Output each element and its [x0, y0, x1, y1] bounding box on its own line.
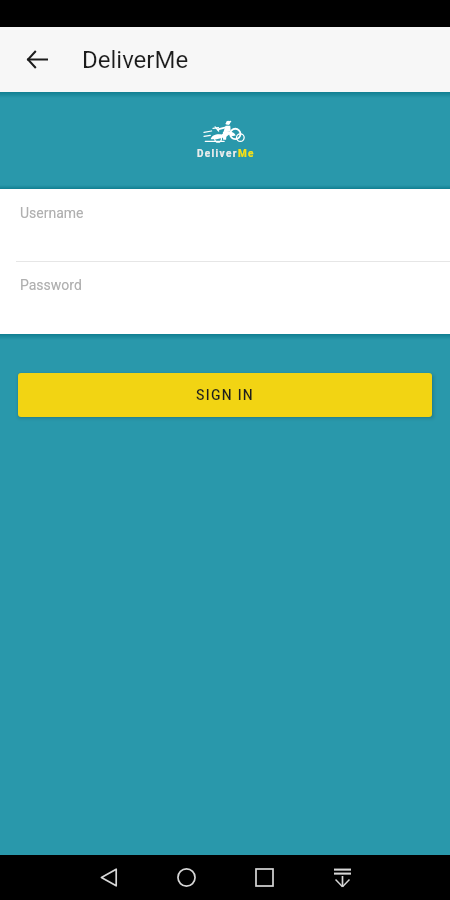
staticText: Deliver: [197, 148, 238, 160]
button[interactable]: SIGN IN: [18, 373, 432, 417]
button[interactable]: Recent apps: [242, 855, 287, 900]
button[interactable]: Home: [164, 855, 209, 900]
staticText: SIGN IN: [196, 387, 255, 403]
staticText: Me: [238, 148, 255, 160]
button[interactable]: Back: [86, 855, 131, 900]
staticText: Username: [20, 205, 84, 221]
staticText: DeliverMe: [82, 46, 189, 74]
button[interactable]: Hide keyboard: [320, 855, 365, 900]
button[interactable]: Navigate up: [14, 27, 60, 92]
staticText: Password: [20, 277, 82, 293]
